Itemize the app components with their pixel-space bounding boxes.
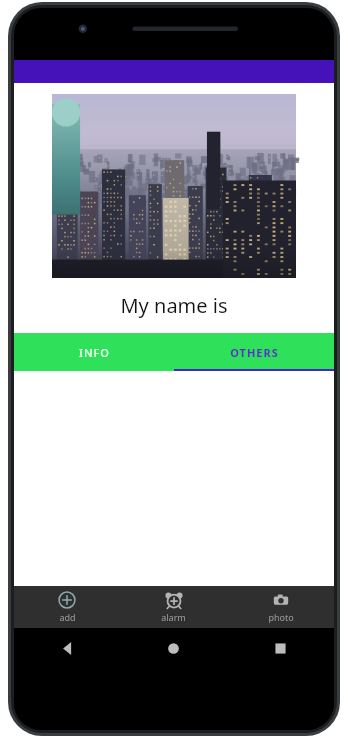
staticText: OTHERS (230, 345, 279, 360)
button[interactable]: add (14, 586, 120, 628)
button[interactable]: Recents (227, 628, 334, 668)
button[interactable]: INFO (14, 333, 174, 371)
staticText: My name is (120, 292, 228, 319)
staticText: INFO (79, 345, 110, 360)
staticText: photo (268, 611, 294, 623)
staticText: alarm (161, 611, 186, 623)
button[interactable]: Home (120, 628, 227, 668)
button[interactable]: Back (14, 628, 120, 668)
button[interactable]: OTHERS (174, 333, 334, 371)
button[interactable]: alarm (120, 586, 227, 628)
button[interactable]: photo (227, 586, 334, 628)
staticText: add (59, 611, 76, 623)
